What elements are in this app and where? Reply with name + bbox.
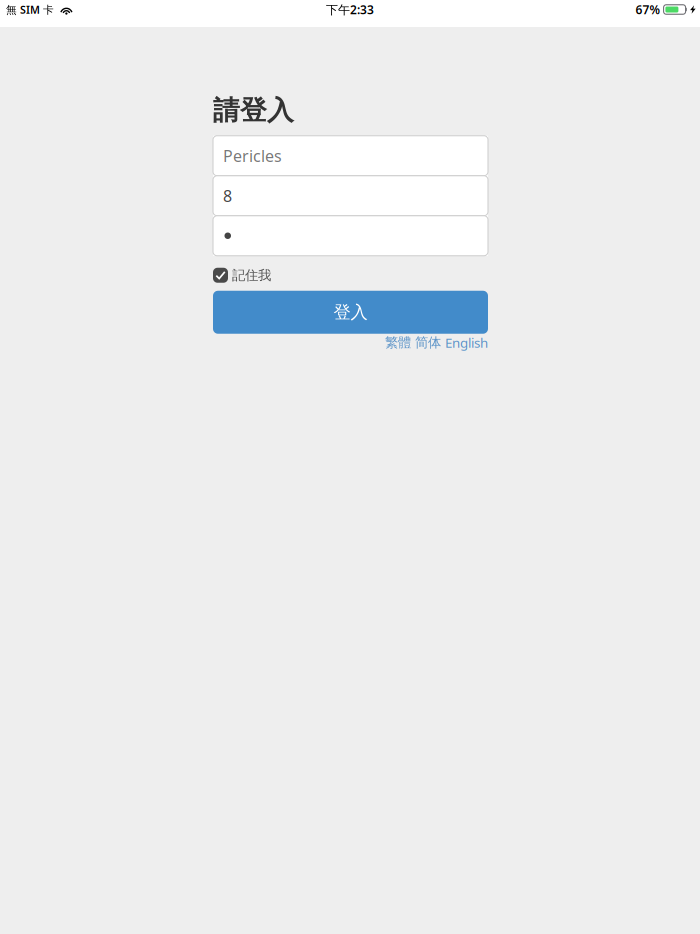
button[interactable]: English: [445, 334, 488, 351]
button[interactable]: 記住我: [213, 268, 488, 283]
staticText: 無 SIM 卡: [6, 2, 54, 17]
button[interactable]: 繁體: [385, 334, 411, 351]
staticText: Pericles: [223, 145, 282, 166]
staticText: 简体: [415, 334, 441, 351]
staticText: 請登入: [213, 94, 294, 127]
button[interactable]: 简体: [415, 334, 441, 351]
staticText: 登入: [333, 302, 367, 323]
button[interactable]: 登入: [213, 291, 488, 334]
staticText: 繁體: [385, 334, 411, 351]
staticText: 記住我: [232, 267, 271, 283]
staticText: 下午2:33: [326, 1, 374, 17]
staticText: English: [445, 334, 488, 351]
staticText: 67%: [636, 1, 661, 17]
staticText: 8: [223, 185, 232, 206]
